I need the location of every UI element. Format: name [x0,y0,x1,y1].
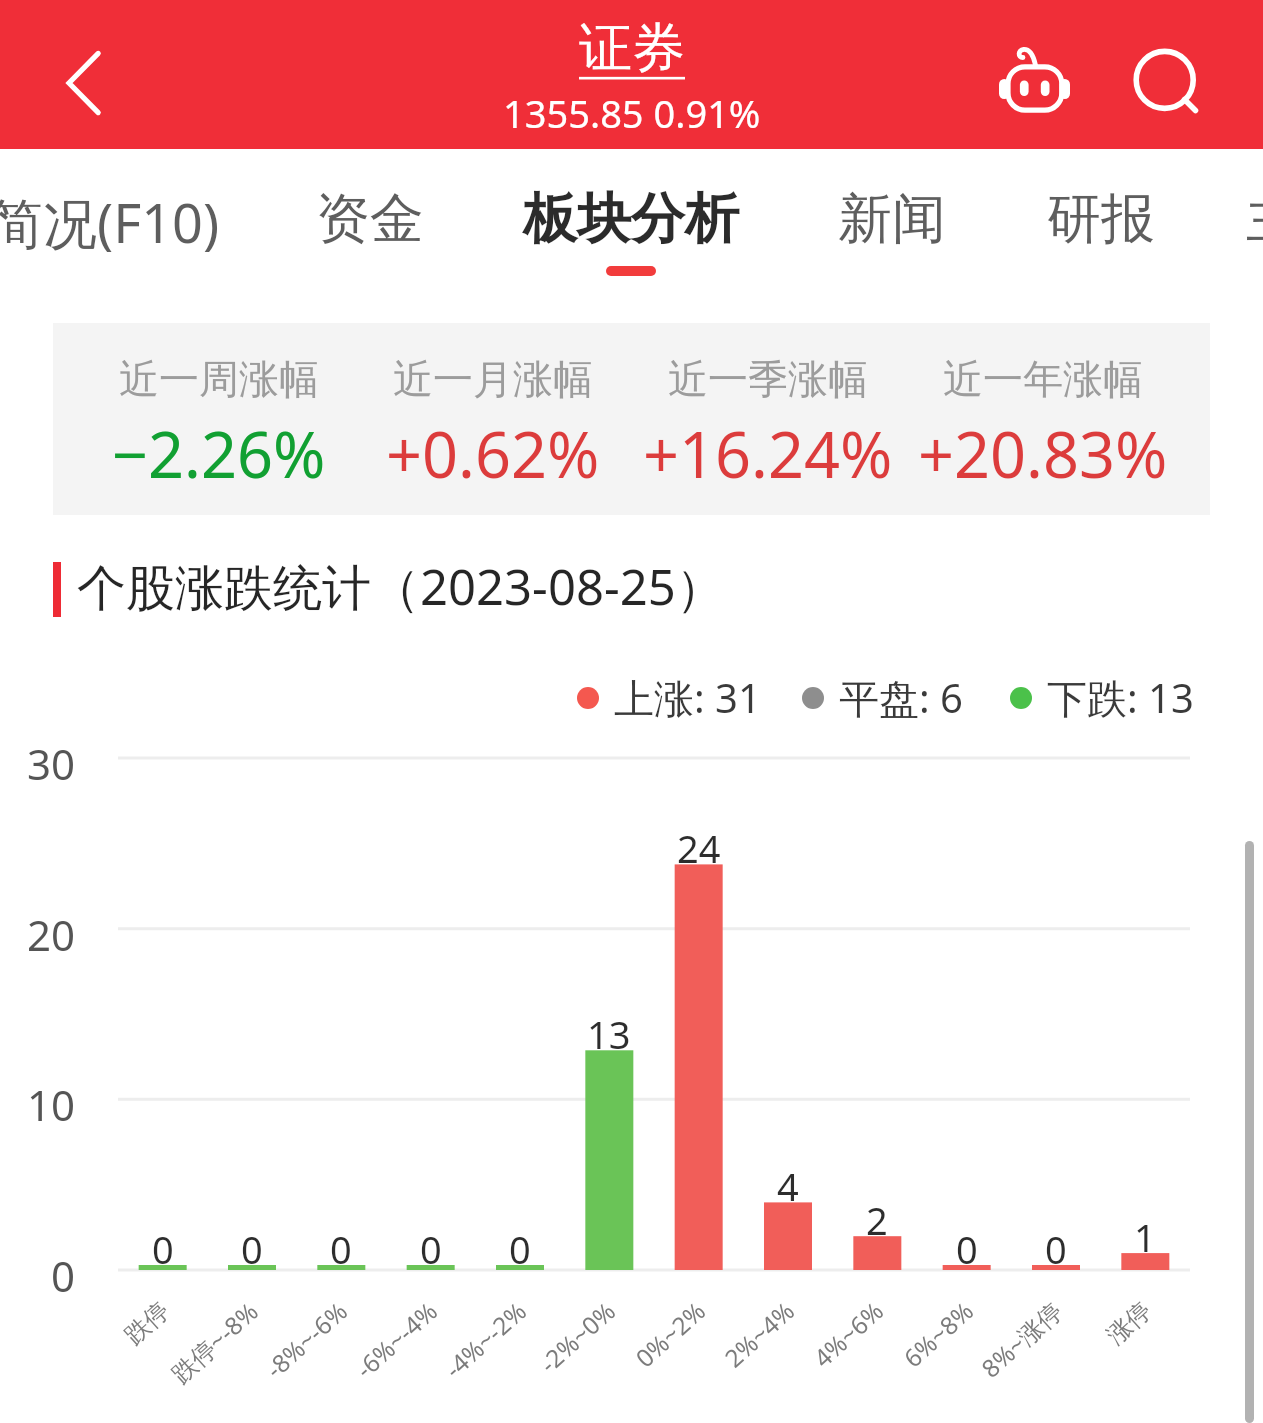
button[interactable]: 下跌: 13 [1010,670,1194,725]
staticText: +0.62% [386,411,600,497]
button[interactable]: 上涨: 31 [577,670,761,725]
staticText: 0%~2% [628,1294,712,1374]
button[interactable]: AI assistant [995,40,1075,120]
staticText: 0 [51,1247,76,1304]
staticText: 研报 [1047,185,1155,253]
staticText: 10 [27,1076,76,1133]
staticText: +16.24% [643,411,893,497]
staticText: 资金 [316,185,424,253]
staticText: 20 [27,906,76,963]
staticText: 0 [152,1223,174,1275]
staticText: 0 [509,1223,531,1275]
staticText: 下跌: 13 [1047,670,1194,725]
staticText: 个股涨跌统计（2023-08-25） [77,553,725,620]
staticText: 主力 [1246,185,1263,253]
button[interactable]: Back [38,38,128,128]
staticText: 1 [1134,1211,1156,1263]
button[interactable]: 新闻 [752,149,1032,323]
button[interactable]: 主力 [1160,149,1263,323]
staticText: -4%~-2% [437,1294,533,1385]
staticText: 6%~8% [896,1294,980,1374]
staticText: -2%~0% [532,1294,622,1380]
staticText: 上涨: 31 [614,670,761,725]
staticText: 2 [866,1194,888,1246]
staticText: 30 [27,735,76,792]
staticText: 13 [587,1008,631,1060]
staticText: 1355.85 0.91% [503,87,761,139]
staticText: -8%~-6% [258,1294,354,1385]
staticText: -6%~-4% [348,1294,444,1385]
staticText: −2.26% [112,411,326,497]
staticText: 24 [677,822,721,874]
staticText: 2%~4% [717,1294,801,1374]
staticText: 跌停 [118,1295,175,1351]
staticText: 0 [330,1223,352,1275]
staticText: 简况(F10) [0,185,220,259]
staticText: 4 [777,1160,799,1212]
button[interactable]: 研报 [961,149,1241,323]
button[interactable]: 平盘: 6 [802,670,963,725]
staticText: 近一周涨幅 [119,354,319,404]
staticText: 0 [1045,1223,1067,1275]
staticText: 涨停 [1100,1295,1157,1351]
staticText: 0 [956,1223,978,1275]
button[interactable]: 简况(F10) [0,149,244,323]
staticText: 跌停~-8% [164,1294,265,1390]
staticText: 平盘: 6 [839,670,963,725]
button[interactable]: 资金 [230,149,510,323]
staticText: 新闻 [838,185,946,253]
staticText: 证券 [579,15,685,82]
button[interactable]: 板块分析 [491,149,771,323]
staticText: 近一年涨幅 [943,354,1143,404]
staticText: 0 [420,1223,442,1275]
staticText: 4%~6% [806,1294,890,1374]
staticText: 0 [241,1223,263,1275]
staticText: 近一月涨幅 [393,354,593,404]
staticText: 近一季涨幅 [668,354,868,404]
staticText: 8%~涨停 [974,1294,1069,1384]
staticText: +20.83% [918,411,1168,497]
staticText: 板块分析 [523,185,739,253]
button[interactable]: Search [1120,38,1210,128]
